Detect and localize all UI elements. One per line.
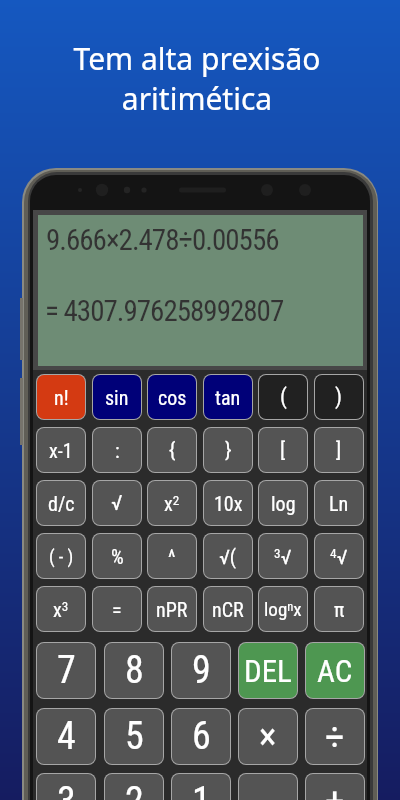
button[interactable]: π (315, 587, 363, 631)
button[interactable]: 10x (204, 481, 252, 525)
staticText: [ (280, 438, 286, 463)
button[interactable]: 6 (172, 709, 230, 764)
button[interactable]: 3 (37, 774, 95, 800)
staticText: + (325, 779, 345, 800)
button[interactable]: √( (204, 534, 252, 578)
button[interactable]: % (93, 534, 141, 578)
staticText: nCR (212, 598, 244, 621)
staticText: Tem alta prexisão aritimética (0, 38, 397, 119)
staticText: Ln (329, 492, 349, 515)
staticText: = 4307.976258992807 (45, 294, 284, 328)
staticText: ] (336, 438, 342, 463)
staticText: √ (111, 491, 123, 516)
staticText: 1 (192, 779, 211, 800)
staticText: 2 (125, 779, 144, 800)
button[interactable]: x3 (37, 587, 85, 631)
button[interactable]: cos (148, 375, 196, 419)
button[interactable]: = (93, 587, 141, 631)
staticText: x-1 (49, 439, 73, 462)
staticText: ( - ) (49, 546, 74, 567)
button[interactable]: √ (93, 481, 141, 525)
button[interactable]: ^ (148, 534, 196, 578)
button[interactable]: } (204, 428, 252, 472)
button[interactable]: x2 (148, 481, 196, 525)
button[interactable]: AC (306, 643, 364, 698)
staticText: % (111, 545, 124, 568)
staticText: 3 (57, 779, 76, 800)
staticText: ^ (168, 545, 176, 568)
staticText: = (112, 598, 122, 621)
button[interactable]: d/c (37, 481, 85, 525)
staticText: cos (158, 386, 187, 409)
staticText: 4 (57, 714, 76, 759)
staticText: { (169, 438, 176, 463)
staticText: 9 (192, 648, 211, 693)
button[interactable]: [ (259, 428, 307, 472)
staticText: tan (215, 386, 241, 409)
button[interactable]: ) (315, 375, 363, 419)
button[interactable]: ÷ (306, 709, 364, 764)
button[interactable]: 3√ (259, 534, 307, 578)
button[interactable]: 2 (105, 774, 163, 800)
staticText: π (334, 598, 345, 621)
staticText: DEL (244, 653, 292, 689)
staticText: 5 (125, 714, 144, 759)
staticText: 4√ (330, 545, 348, 568)
staticText: ( (280, 384, 287, 410)
button[interactable]: 9 (172, 643, 230, 698)
button[interactable]: x-1 (37, 428, 85, 472)
button[interactable]: nPR (148, 587, 196, 631)
staticText: 10x (214, 492, 243, 515)
button[interactable]: 5 (105, 709, 163, 764)
button[interactable]: { (148, 428, 196, 472)
button[interactable]: log (259, 481, 307, 525)
button[interactable]: : (93, 428, 141, 472)
staticText: ÷ (325, 714, 345, 760)
button[interactable]: + (306, 774, 364, 800)
button[interactable]: Ln (315, 481, 363, 525)
button[interactable]: sin (93, 375, 141, 419)
button[interactable]: × (239, 709, 297, 764)
staticText: } (225, 438, 232, 463)
button[interactable]: 1 (172, 774, 230, 800)
staticText: ) (335, 384, 343, 410)
staticText: x2 (164, 492, 180, 515)
button[interactable]: - (239, 774, 297, 800)
button[interactable]: 4 (37, 709, 95, 764)
staticText: 3√ (274, 545, 292, 568)
button[interactable]: ( - ) (37, 534, 85, 578)
button[interactable]: nCR (204, 587, 252, 631)
staticText: 8 (125, 648, 144, 693)
staticText: √( (219, 545, 237, 568)
button[interactable]: ( (259, 375, 307, 419)
button[interactable]: DEL (239, 643, 297, 698)
staticText: d/c (48, 492, 75, 515)
button[interactable]: 8 (105, 643, 163, 698)
staticText: : (115, 439, 120, 462)
button[interactable]: n! (37, 375, 85, 419)
button[interactable]: tan (204, 375, 252, 419)
staticText: n! (54, 386, 69, 409)
staticText: log (271, 492, 296, 515)
button[interactable]: ] (315, 428, 363, 472)
button[interactable]: 7 (37, 643, 95, 698)
staticText: x3 (53, 598, 69, 621)
staticText: 7 (57, 648, 76, 693)
staticText: nPR (156, 598, 188, 621)
staticText: sin (105, 386, 129, 409)
staticText: AC (317, 653, 353, 689)
staticText: × (259, 715, 277, 758)
staticText: lognx (264, 598, 302, 620)
staticText: 9.666×2.478÷0.00556 (46, 223, 279, 257)
staticText: 6 (192, 714, 211, 759)
button[interactable]: 4√ (315, 534, 363, 578)
button[interactable]: lognx (259, 587, 307, 631)
